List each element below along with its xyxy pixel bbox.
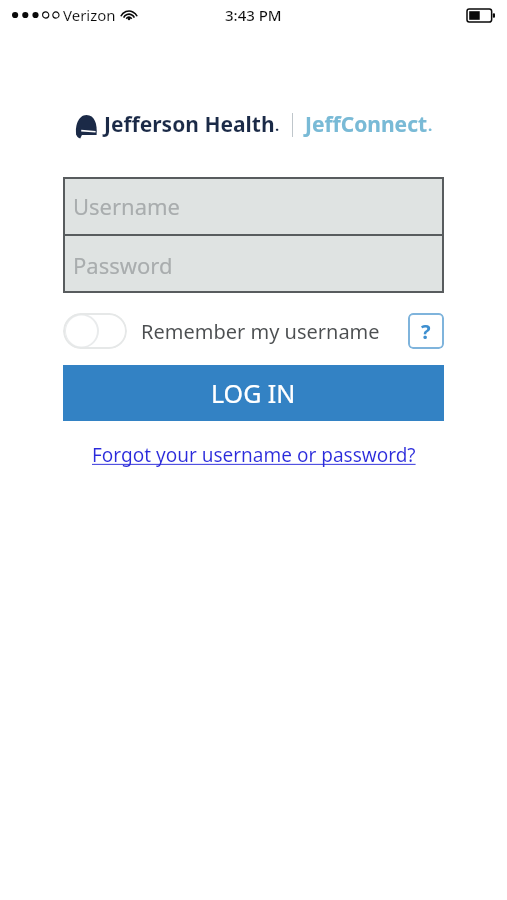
- staticText: Jefferson Health: [104, 110, 275, 139]
- button[interactable]: LOG IN: [63, 365, 444, 421]
- button[interactable]: Username: [63, 177, 444, 234]
- staticText: Password: [73, 250, 173, 280]
- staticText: 3:43 PM: [225, 5, 282, 25]
- staticText: Username: [73, 191, 181, 221]
- button[interactable]: Password: [63, 236, 444, 293]
- staticText: .: [428, 115, 433, 135]
- staticText: LOG IN: [211, 376, 296, 410]
- staticText: JeffConnect: [305, 110, 428, 139]
- button[interactable]: Remember my username toggle: [63, 313, 127, 349]
- button[interactable]: Forgot your username or password?: [92, 442, 416, 468]
- staticText: .: [275, 115, 280, 135]
- staticText: Verizon: [63, 5, 116, 25]
- button[interactable]: Remember my username: [141, 318, 380, 345]
- button[interactable]: Help: [408, 313, 444, 349]
- staticText: ?: [421, 318, 431, 345]
